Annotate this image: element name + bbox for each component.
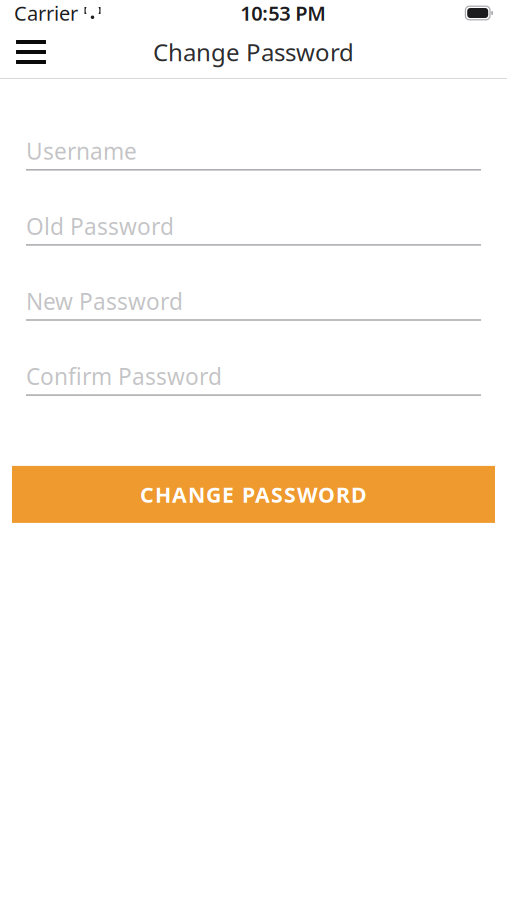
staticText: Old Password <box>26 211 174 241</box>
staticText: Username <box>26 136 137 166</box>
button[interactable]: Menu <box>5 26 57 78</box>
staticText: New Password <box>26 286 183 316</box>
staticText: CHANGE PASSWORD <box>140 480 367 508</box>
staticText: Confirm Password <box>26 361 222 391</box>
staticText: Change Password <box>153 36 354 68</box>
staticText: Carrier <box>14 0 78 26</box>
staticText: 10:53 PM <box>240 0 326 26</box>
button[interactable]: CHANGE PASSWORD <box>12 466 495 523</box>
